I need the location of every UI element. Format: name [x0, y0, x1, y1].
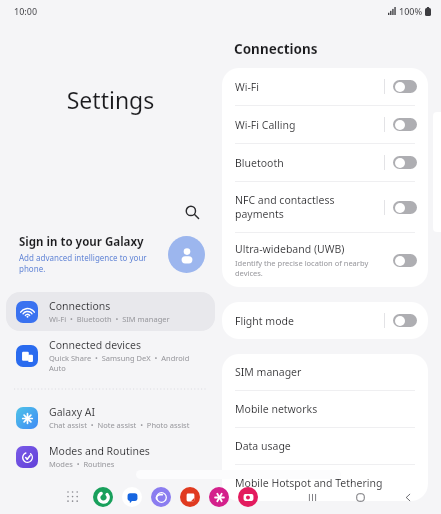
button[interactable]: Phone	[93, 487, 113, 507]
button[interactable]: Wi-Fi Calling	[222, 106, 428, 143]
button[interactable]: Data usage	[222, 428, 428, 464]
staticText: Modes • Routines	[49, 459, 115, 469]
button[interactable]: Modes and Routines	[6, 437, 215, 476]
staticText: Quick Share • Samsung DeX • Android Auto	[49, 353, 205, 373]
button[interactable]: Gallery	[209, 487, 229, 507]
button[interactable]: Search	[177, 197, 207, 227]
staticText: Wi-Fi	[235, 80, 260, 94]
button[interactable]: Camera	[238, 487, 258, 507]
button[interactable]: Toggle	[393, 201, 417, 214]
staticText: Connections	[234, 40, 318, 58]
staticText: 100%	[399, 5, 423, 17]
button[interactable]: Toggle	[393, 80, 417, 93]
button[interactable]: Sign in to your Galaxy	[6, 230, 215, 278]
staticText: Mobile Hotspot and Tethering	[235, 476, 383, 490]
button[interactable]: Internet	[151, 487, 171, 507]
button[interactable]: Toggle	[393, 118, 417, 131]
button[interactable]: SIM manager	[222, 354, 428, 390]
button[interactable]: Recents	[301, 486, 323, 508]
button[interactable]: Ultra-wideband (UWB)	[222, 233, 428, 287]
button[interactable]: Toggle	[393, 156, 417, 169]
staticText: Chat assist • Note assist • Photo assist	[49, 420, 190, 430]
staticText: Connected devices	[49, 338, 142, 352]
button[interactable]: Connections	[6, 292, 215, 331]
staticText: Wi-Fi Calling	[235, 118, 296, 132]
staticText: Ultra-wideband (UWB)	[235, 242, 345, 256]
staticText: Sign in to your Galaxy	[19, 234, 144, 250]
button[interactable]: Bluetooth	[222, 144, 428, 181]
staticText: SIM manager	[235, 365, 302, 379]
button[interactable]: Toggle	[393, 314, 417, 327]
button[interactable]: Notes	[180, 487, 200, 507]
button[interactable]: Galaxy AI	[6, 398, 215, 437]
staticText: Settings	[0, 84, 221, 115]
staticText: Connections	[49, 299, 111, 313]
button[interactable]: Back	[397, 486, 419, 508]
staticText: Data usage	[235, 439, 291, 453]
staticText: Add advanced intelligence to your phone.	[19, 252, 147, 274]
button[interactable]: Connected devices	[6, 331, 215, 380]
staticText: NFC and contactless payments	[235, 193, 384, 221]
button[interactable]: Mobile Hotspot and Tethering	[222, 465, 428, 501]
button[interactable]: Wi-Fi	[222, 68, 428, 105]
button[interactable]: Apps	[62, 486, 84, 508]
button[interactable]: Messages	[122, 487, 142, 507]
staticText: Wi-Fi • Bluetooth • SIM manager	[49, 314, 170, 324]
staticText: 10:00	[14, 5, 38, 17]
button[interactable]: Toggle	[393, 254, 417, 267]
button[interactable]: Home	[349, 486, 371, 508]
staticText: Mobile networks	[235, 402, 318, 416]
button[interactable]: NFC and contactless payments	[222, 182, 428, 232]
staticText: Modes and Routines	[49, 444, 150, 458]
staticText: Bluetooth	[235, 156, 284, 170]
staticText: Galaxy AI	[49, 405, 96, 419]
button[interactable]: Flight mode	[222, 302, 428, 339]
staticText: Identify the precise location of nearby …	[235, 258, 369, 278]
staticText: Flight mode	[235, 314, 294, 328]
button[interactable]: Mobile networks	[222, 391, 428, 427]
